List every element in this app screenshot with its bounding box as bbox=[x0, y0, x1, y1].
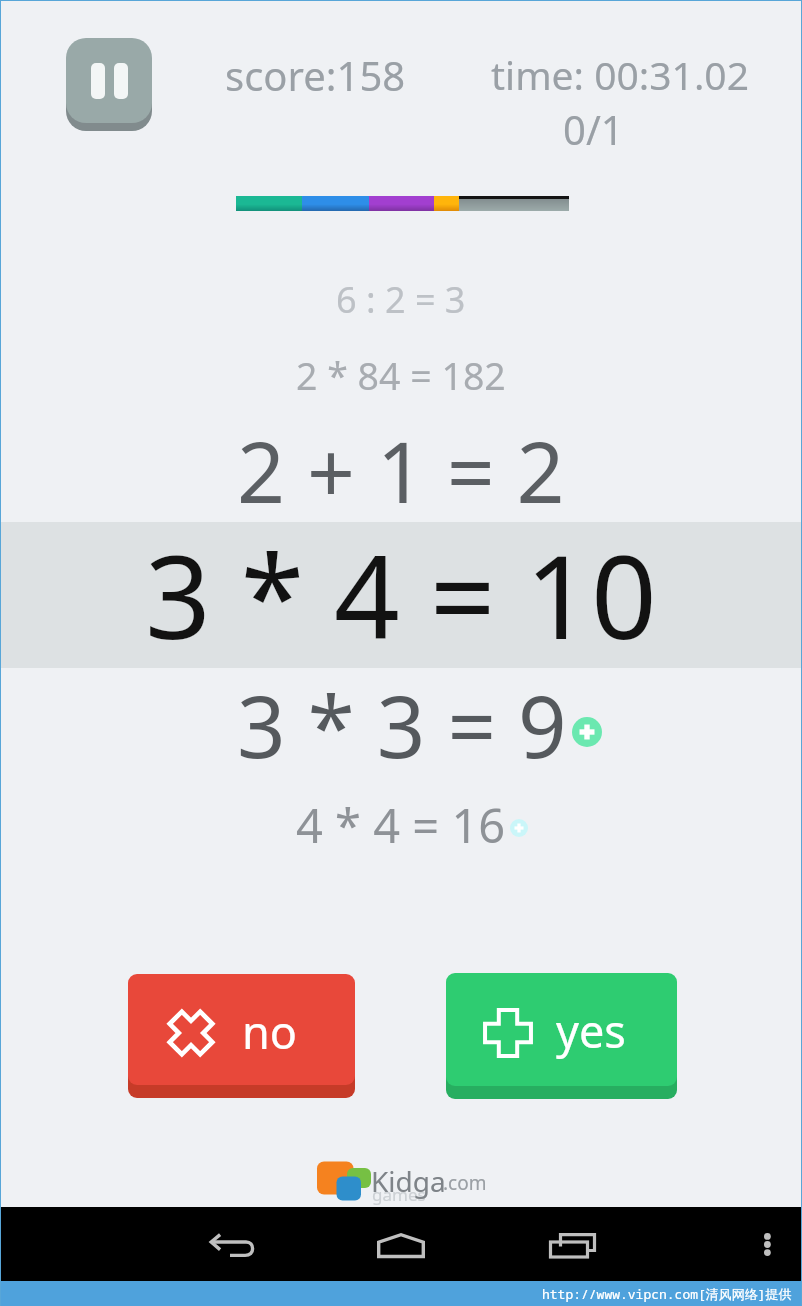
button[interactable]: More options bbox=[746, 1207, 794, 1281]
staticText: 0/1 bbox=[563, 102, 624, 156]
button[interactable]: yes bbox=[446, 973, 677, 1099]
staticText: http://www.vipcn.com[清风网络]提供 bbox=[542, 1285, 792, 1303]
button[interactable]: Home bbox=[357, 1207, 447, 1281]
staticText: 3 * 4 = 10 bbox=[145, 516, 657, 673]
button[interactable]: Back bbox=[187, 1207, 277, 1281]
staticText: score:158 bbox=[225, 48, 406, 102]
button[interactable]: Recents bbox=[507, 1207, 597, 1281]
staticText: time: 00:31.02 bbox=[491, 48, 749, 101]
staticText: no bbox=[242, 1001, 298, 1062]
staticText: Kidga bbox=[371, 1162, 446, 1200]
staticText: 6 : 2 = 3 bbox=[336, 275, 466, 324]
staticText: 4 * 4 = 16 bbox=[296, 793, 506, 857]
staticText: .com bbox=[443, 1170, 487, 1196]
button[interactable]: no bbox=[128, 974, 355, 1098]
staticText: 2 * 84 = 182 bbox=[296, 350, 506, 401]
staticText: games bbox=[372, 1183, 426, 1206]
staticText: 3 * 3 = 9 bbox=[237, 667, 567, 783]
staticText: yes bbox=[556, 1000, 626, 1061]
button[interactable]: Pause bbox=[66, 38, 152, 131]
staticText: 2 + 1 = 2 bbox=[237, 413, 565, 527]
